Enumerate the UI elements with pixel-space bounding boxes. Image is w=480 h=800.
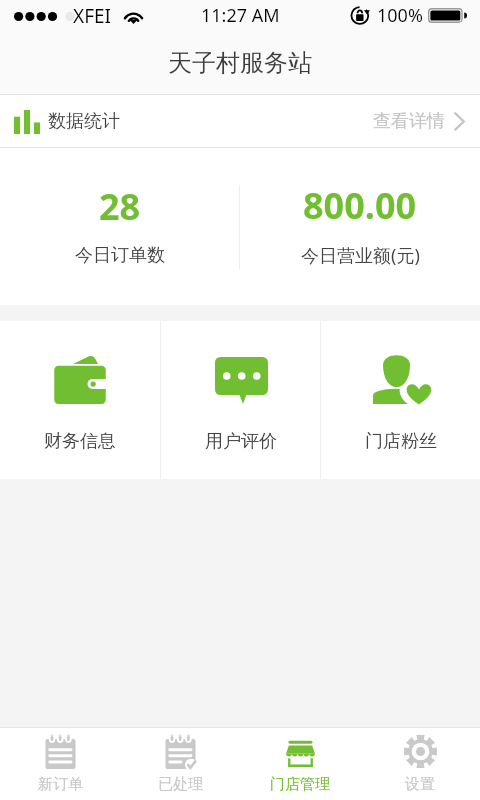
staticText: 28 <box>99 182 141 231</box>
staticText: 100% <box>377 3 423 28</box>
button[interactable]: 门店粉丝 <box>321 321 480 479</box>
button[interactable]: 财务信息 <box>0 321 160 479</box>
button[interactable]: 用户评价 <box>161 321 320 479</box>
staticText: 今日营业额(元) <box>301 243 420 268</box>
staticText: 用户评价 <box>205 430 277 453</box>
button[interactable]: 已处理 <box>120 728 240 800</box>
staticText: 查看详情 <box>373 110 445 133</box>
button[interactable]: 查看详情 <box>363 102 480 141</box>
button[interactable]: 新订单 <box>0 728 120 800</box>
button[interactable]: 800.00 <box>240 148 480 305</box>
staticText: 已处理 <box>158 775 203 794</box>
button[interactable]: 28 <box>0 148 239 305</box>
button[interactable]: 设置 <box>360 728 480 800</box>
staticText: 数据统计 <box>48 110 120 133</box>
staticText: 门店粉丝 <box>365 430 437 453</box>
staticText: 财务信息 <box>44 430 116 453</box>
staticText: 800.00 <box>303 181 417 230</box>
staticText: 11:27 AM <box>201 3 280 28</box>
staticText: 新订单 <box>38 775 83 794</box>
staticText: 今日订单数 <box>75 244 165 267</box>
staticText: 天子村服务站 <box>168 48 312 78</box>
staticText: 设置 <box>405 775 435 794</box>
button[interactable]: 门店管理 <box>240 728 360 800</box>
staticText: 门店管理 <box>270 775 330 794</box>
staticText: XFEI <box>73 3 112 29</box>
